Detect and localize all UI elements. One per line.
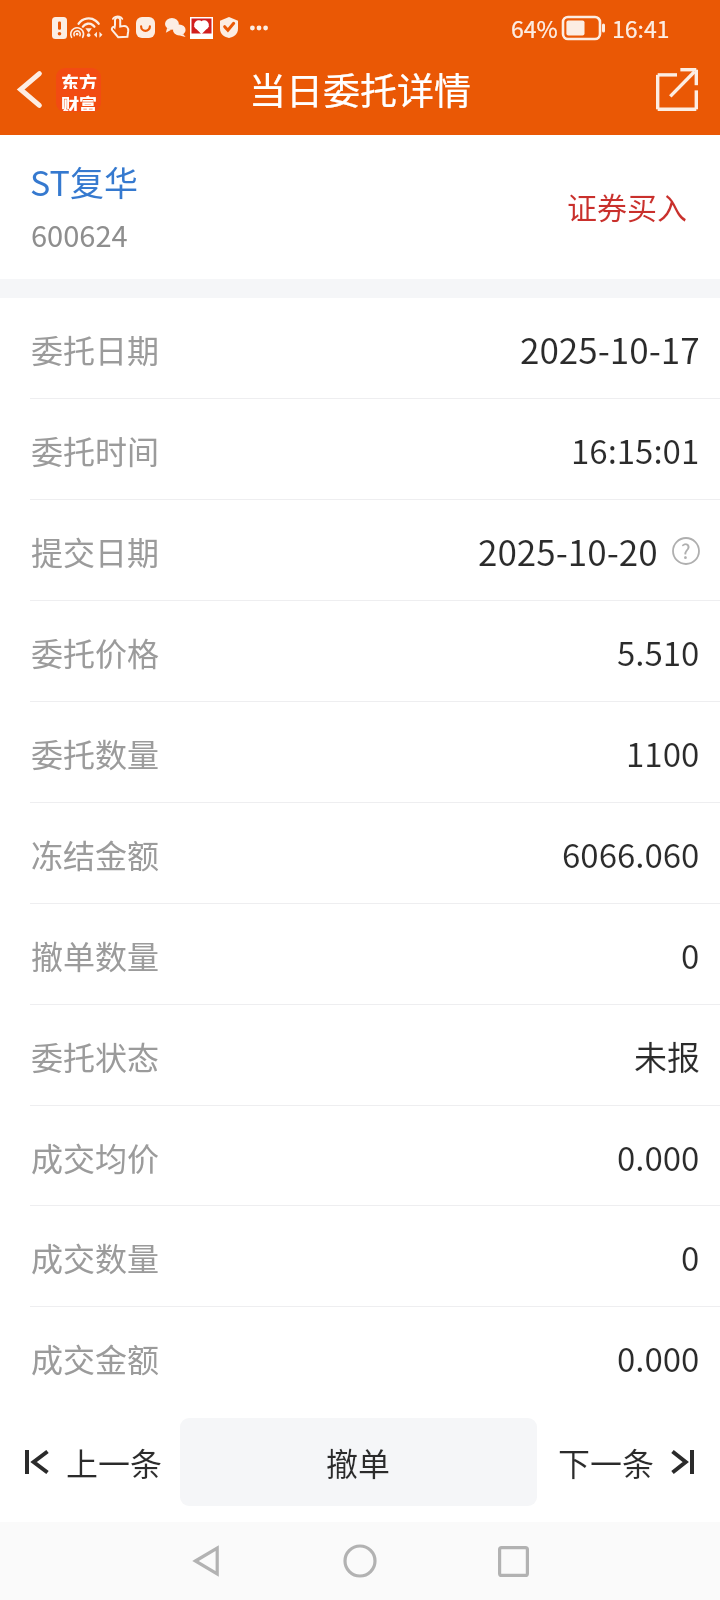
staticText: 撤单 bbox=[326, 1439, 391, 1485]
staticText: 冻结金额 bbox=[31, 831, 160, 877]
staticText: 上一条 bbox=[66, 1439, 163, 1485]
staticText: 64% bbox=[511, 11, 558, 44]
button[interactable]: 下一条 bbox=[558, 1439, 720, 1485]
staticText: 1100 bbox=[626, 729, 700, 777]
staticText: 0.000 bbox=[617, 1334, 700, 1382]
staticText: 委托状态 bbox=[31, 1033, 160, 1079]
staticText: 16:41 bbox=[612, 11, 670, 44]
staticText: 未报 bbox=[634, 1032, 700, 1080]
button[interactable]: 冻结金额 bbox=[0, 803, 720, 904]
staticText: 当日委托详情 bbox=[249, 62, 471, 116]
button[interactable]: 撤单 bbox=[180, 1418, 537, 1506]
staticText: 东方 bbox=[61, 69, 97, 89]
button[interactable]: 委托数量 bbox=[0, 702, 720, 803]
staticText: 成交金额 bbox=[31, 1335, 160, 1381]
staticText: 委托价格 bbox=[31, 629, 160, 675]
staticText: 下一条 bbox=[558, 1439, 655, 1485]
button[interactable]: 上一条 bbox=[0, 1439, 163, 1485]
button[interactable]: 成交金额 bbox=[0, 1307, 720, 1408]
staticText: 撤单数量 bbox=[31, 932, 160, 978]
button[interactable]: Home bbox=[310, 1522, 410, 1600]
staticText: 16:15:01 bbox=[571, 426, 700, 474]
button[interactable]: 提交日期 bbox=[0, 500, 720, 601]
staticText: 0 bbox=[681, 931, 700, 979]
button[interactable]: 委托状态 bbox=[0, 1005, 720, 1106]
staticText: 财富 bbox=[61, 91, 97, 111]
staticText: 成交数量 bbox=[31, 1234, 160, 1280]
button[interactable]: 委托日期 bbox=[0, 298, 720, 399]
staticText: 2025-10-20 bbox=[478, 525, 658, 576]
button[interactable]: 撤单数量 bbox=[0, 904, 720, 1005]
staticText: 600624 bbox=[31, 213, 128, 255]
staticText: 0 bbox=[681, 1233, 700, 1281]
staticText: 委托时间 bbox=[31, 427, 160, 473]
staticText: 委托数量 bbox=[31, 730, 160, 776]
other: Back bbox=[17, 71, 43, 108]
staticText: 2025-10-17 bbox=[520, 323, 700, 374]
button[interactable]: 委托价格 bbox=[0, 601, 720, 702]
staticText: 成交均价 bbox=[31, 1134, 160, 1180]
button[interactable]: 成交均价 bbox=[0, 1106, 720, 1207]
staticText: ST复华 bbox=[30, 157, 138, 206]
button[interactable]: Share bbox=[656, 68, 720, 111]
button[interactable]: 成交数量 bbox=[0, 1206, 720, 1307]
staticText: 5.510 bbox=[617, 628, 700, 676]
button[interactable]: Back bbox=[0, 73, 111, 117]
staticText: 证券买入 bbox=[567, 184, 687, 227]
staticText: 0.000 bbox=[617, 1133, 700, 1181]
staticText: 6066.060 bbox=[562, 830, 700, 878]
staticText: ? bbox=[681, 536, 691, 564]
button[interactable]: 委托时间 bbox=[0, 399, 720, 500]
staticText: 提交日期 bbox=[31, 528, 160, 574]
button[interactable]: Back bbox=[157, 1522, 257, 1600]
button[interactable]: Recents bbox=[463, 1522, 563, 1600]
staticText: 委托日期 bbox=[31, 326, 160, 372]
